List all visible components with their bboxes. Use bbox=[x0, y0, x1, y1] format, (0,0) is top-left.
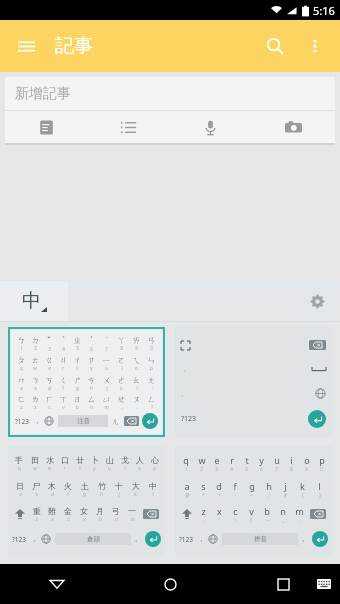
staticText: ㄝ bbox=[117, 394, 126, 404]
staticText: j bbox=[118, 491, 120, 497]
staticText: l bbox=[136, 385, 138, 391]
button[interactable]: 手 bbox=[8, 446, 165, 556]
button[interactable]: ㄅ bbox=[11, 330, 162, 434]
staticText: 2 bbox=[34, 345, 37, 351]
staticText: r bbox=[230, 454, 234, 466]
staticText: 9 bbox=[305, 466, 308, 472]
staticText: ? bbox=[151, 404, 153, 410]
button[interactable]: Recent apps bbox=[227, 564, 340, 604]
staticText: v bbox=[62, 404, 65, 410]
staticText: 注音 bbox=[77, 417, 90, 425]
button[interactable]: Photo note bbox=[252, 111, 335, 143]
staticText: = bbox=[250, 492, 253, 498]
button[interactable]: 中 bbox=[0, 281, 68, 321]
staticText: l bbox=[318, 480, 321, 492]
staticText: w bbox=[198, 454, 206, 466]
staticText: m bbox=[295, 505, 304, 517]
button[interactable]: New list bbox=[87, 111, 169, 143]
button[interactable]: Menu bbox=[9, 29, 43, 63]
staticText: ， bbox=[31, 535, 37, 543]
staticText: s bbox=[34, 385, 37, 391]
staticText: v bbox=[249, 505, 254, 517]
staticText: q bbox=[18, 465, 21, 471]
staticText: ˇ bbox=[47, 335, 51, 346]
button[interactable]: Enter bbox=[312, 531, 328, 547]
button[interactable]: Enter bbox=[308, 410, 326, 428]
staticText: 大 bbox=[132, 481, 140, 491]
staticText: e bbox=[214, 454, 220, 466]
staticText: ㄌ bbox=[31, 394, 40, 404]
staticText: h bbox=[90, 385, 93, 391]
staticText: 中 bbox=[22, 289, 41, 313]
staticText: u bbox=[108, 465, 111, 471]
button[interactable]: Home bbox=[114, 564, 227, 604]
staticText: a bbox=[184, 480, 190, 492]
staticText: 口 bbox=[61, 455, 69, 465]
staticText: b bbox=[264, 505, 270, 517]
staticText: x bbox=[51, 516, 54, 522]
staticText: g bbox=[83, 491, 86, 497]
staticText: s bbox=[35, 491, 38, 497]
staticText: 7 bbox=[275, 466, 278, 472]
staticText: ， bbox=[34, 417, 40, 425]
staticText: 5 bbox=[76, 345, 79, 351]
staticText: c bbox=[233, 505, 238, 517]
staticText: ㄨ bbox=[102, 375, 111, 385]
staticText: 3 bbox=[215, 466, 218, 472]
staticText: ㄦ bbox=[112, 417, 120, 426]
staticText: e bbox=[48, 465, 51, 471]
staticText: v bbox=[83, 516, 86, 522]
staticText: / bbox=[268, 492, 270, 498]
button[interactable]: q bbox=[175, 446, 332, 556]
staticText: ㄑ bbox=[59, 375, 68, 385]
staticText: ~ bbox=[266, 517, 269, 523]
button[interactable]: Settings bbox=[302, 286, 332, 316]
staticText: 1 bbox=[20, 345, 23, 351]
staticText: 4 bbox=[62, 346, 65, 352]
staticText: 5 bbox=[245, 466, 248, 472]
button[interactable]: Voice note bbox=[169, 111, 252, 143]
staticText: g bbox=[249, 480, 255, 492]
button[interactable]: More options bbox=[298, 29, 332, 63]
staticText: j bbox=[284, 480, 287, 492]
staticText: ' bbox=[218, 517, 220, 523]
staticText: ㄤ bbox=[147, 375, 156, 385]
button[interactable]: Change keyboard bbox=[314, 574, 334, 594]
staticText: t bbox=[79, 465, 81, 471]
staticText: y bbox=[90, 365, 93, 371]
staticText: 尸 bbox=[32, 481, 40, 491]
staticText: ˋ bbox=[62, 335, 65, 346]
staticText: ㄜ bbox=[117, 375, 126, 385]
button[interactable]: Enter bbox=[145, 531, 161, 547]
staticText: ㄥ bbox=[147, 394, 156, 404]
button[interactable]: Search bbox=[257, 28, 293, 64]
staticText: 山 bbox=[106, 455, 114, 465]
button[interactable]: Enter bbox=[142, 413, 158, 429]
staticText: 中 bbox=[149, 481, 157, 491]
staticText: t bbox=[76, 365, 78, 371]
staticText: 4 bbox=[230, 466, 233, 472]
staticText: o bbox=[138, 465, 141, 471]
staticText: 。 bbox=[135, 535, 141, 543]
staticText: ㄐ bbox=[59, 355, 68, 365]
button[interactable]: New text note bbox=[5, 111, 87, 143]
staticText: , bbox=[203, 517, 205, 523]
staticText: 3 bbox=[48, 346, 51, 352]
staticText: m bbox=[104, 404, 109, 410]
staticText: ㄈ bbox=[17, 394, 26, 404]
staticText: ㄓ bbox=[73, 335, 82, 345]
staticText: b bbox=[99, 516, 102, 522]
staticText: l bbox=[152, 491, 154, 497]
staticText: d bbox=[48, 385, 51, 391]
staticText: 十 bbox=[115, 481, 123, 491]
button[interactable]: Back bbox=[0, 564, 114, 604]
button[interactable]: ， bbox=[175, 327, 332, 437]
staticText: 心 bbox=[151, 455, 159, 465]
button[interactable]: 新增記事 bbox=[5, 77, 335, 145]
staticText: o bbox=[135, 365, 138, 371]
staticText: ㄡ bbox=[132, 394, 141, 404]
staticText: 2 bbox=[200, 466, 203, 472]
staticText: n bbox=[280, 505, 286, 517]
staticText: 6 bbox=[260, 466, 263, 472]
staticText: z bbox=[35, 516, 38, 522]
